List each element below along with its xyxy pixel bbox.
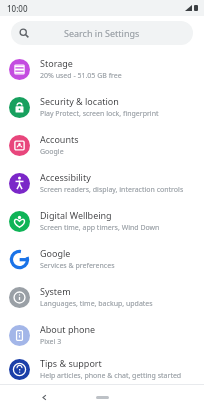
staticText: Tips & support <box>40 357 102 369</box>
staticText: Languages, time, backup, updates <box>40 299 153 309</box>
button[interactable]: Security & location <box>0 88 204 126</box>
staticText: Digital Wellbeing <box>40 209 112 221</box>
staticText: Screen readers, display, interaction con… <box>40 185 184 195</box>
staticText: Screen time, app timers, Wind Down <box>40 223 160 233</box>
button[interactable]: Google <box>0 240 204 278</box>
staticText: 20% used - 51.05 GB free <box>40 71 122 81</box>
staticText: About phone <box>40 323 96 335</box>
button[interactable]: Back <box>36 389 52 405</box>
staticText: Pixel 3 <box>40 337 62 347</box>
staticText: Services & preferences <box>40 261 115 271</box>
button[interactable]: Search in Settings <box>11 21 193 45</box>
button[interactable]: Storage <box>0 50 204 88</box>
staticText: Google <box>40 147 64 157</box>
staticText: Storage <box>40 57 73 69</box>
staticText: System <box>40 285 71 297</box>
staticText: Google <box>40 247 71 259</box>
button[interactable]: Accessibility <box>0 164 204 202</box>
button[interactable]: Home <box>86 391 118 403</box>
staticText: Accessibility <box>40 171 91 183</box>
staticText: 10:00 <box>7 3 28 14</box>
button[interactable]: Tips & support <box>0 354 204 384</box>
staticText: Search in Settings <box>64 27 140 39</box>
staticText: Accounts <box>40 133 79 145</box>
button[interactable]: Digital Wellbeing <box>0 202 204 240</box>
button[interactable]: About phone <box>0 316 204 354</box>
staticText: Help articles, phone & chat, getting sta… <box>40 371 182 381</box>
button[interactable]: System <box>0 278 204 316</box>
staticText: Security & location <box>40 95 119 107</box>
staticText: Play Protect, screen lock, fingerprint <box>40 109 159 119</box>
button[interactable]: Accounts <box>0 126 204 164</box>
